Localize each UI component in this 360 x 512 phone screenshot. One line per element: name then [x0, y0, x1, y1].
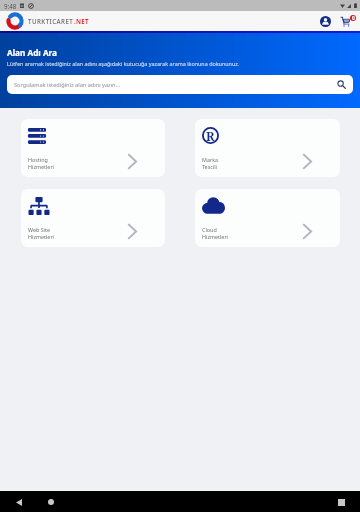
staticText: R — [206, 128, 215, 144]
button[interactable]: Cloud — [195, 189, 340, 247]
staticText: Sorgulamak istediğiniz alan adını yazın.… — [14, 81, 121, 89]
button[interactable]: Web Site — [21, 189, 165, 247]
button[interactable]: Hosting — [21, 119, 165, 177]
button[interactable]: Recents — [335, 496, 347, 508]
staticText: 9:48 — [4, 2, 17, 10]
staticText: Hizmetleri — [28, 233, 54, 240]
staticText: Alan Adı Ara — [7, 47, 57, 58]
button[interactable]: Account — [317, 13, 333, 29]
staticText: Lütfen aramak istediğiniz alan adını aşa… — [7, 60, 240, 67]
button[interactable]: Back — [13, 496, 25, 508]
staticText: Cloud — [202, 226, 217, 233]
staticText: Hosting — [28, 156, 48, 163]
button[interactable]: Cart — [341, 13, 360, 29]
staticText: Hizmetleri — [28, 163, 54, 170]
button[interactable]: R — [195, 119, 340, 177]
button[interactable]: Home — [45, 496, 57, 508]
staticText: Marka — [202, 156, 219, 163]
staticText: 0 — [352, 15, 355, 21]
staticText: Tescili — [202, 163, 218, 170]
button[interactable]: Search — [335, 78, 348, 91]
staticText: Web Site — [28, 226, 50, 233]
staticText: Hizmetleri — [202, 233, 228, 240]
staticText: .NET — [74, 17, 89, 25]
staticText: TURKTICARET — [28, 17, 74, 25]
button[interactable]: Sorgulamak istediğiniz alan adını yazın.… — [7, 75, 353, 94]
